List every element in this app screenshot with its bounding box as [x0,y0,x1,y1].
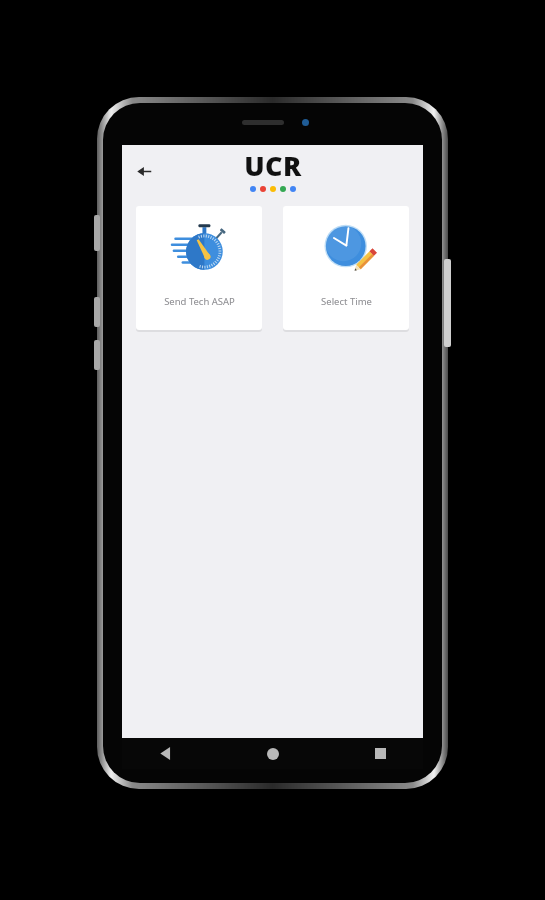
button[interactable]: Select Time [283,206,409,330]
staticText: Select Time [321,295,372,308]
button[interactable]: Home [256,738,290,769]
button[interactable]: Back [127,154,161,188]
staticText: Send Tech ASAP [164,295,235,308]
button[interactable]: Recent apps [363,738,397,769]
button[interactable]: Back [148,738,182,769]
button[interactable]: Send Tech ASAP [136,206,262,330]
staticText: UCR [244,147,302,184]
